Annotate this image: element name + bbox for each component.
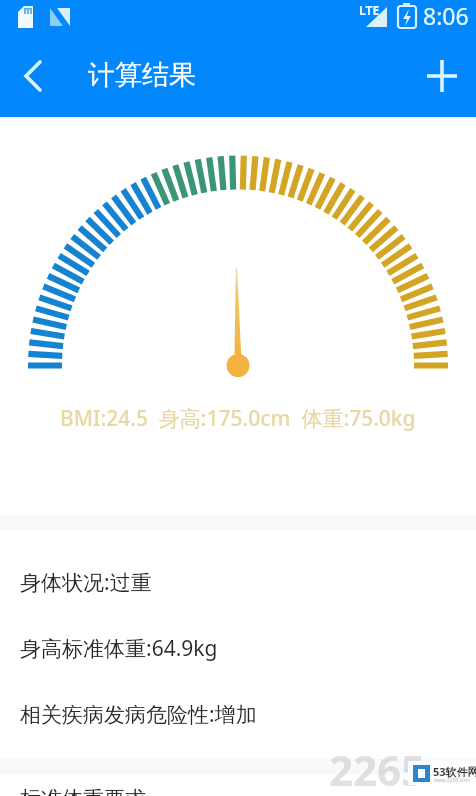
staticText: 8:06 [423,0,469,31]
staticText: 2265 [329,741,426,796]
staticText: 计算结果 [88,58,196,92]
button[interactable]: Add [414,48,470,104]
staticText: BMI:24.5 身高:175.0cm 体重:75.0kg [60,404,416,433]
staticText: 身体状况:过重 [20,568,152,597]
staticText: www.2265.com [434,777,470,784]
button[interactable]: Back [5,48,61,104]
staticText: 53软件网 [433,764,476,779]
staticText: 标准体重要求 [20,786,146,796]
staticText: 相关疾病发病危险性:增加 [20,700,257,729]
staticText: LTE [359,2,380,18]
staticText: 身高标准体重:64.9kg [20,634,218,663]
